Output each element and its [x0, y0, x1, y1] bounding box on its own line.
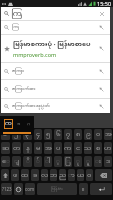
button[interactable]: မ: [34, 142, 42, 154]
button[interactable]: း: [94, 156, 102, 167]
button[interactable]: ဟ: [104, 142, 112, 154]
button[interactable]: Clear query: [95, 7, 108, 20]
staticText: ယ: [77, 171, 84, 180]
button[interactable]: ဆ: [1, 142, 10, 154]
staticText: ာ: [68, 171, 75, 180]
staticText: ၀: [96, 130, 101, 139]
staticText: ၉: [86, 130, 91, 139]
button[interactable]: ည: [59, 169, 66, 181]
button[interactable]: ဝ: [86, 169, 93, 181]
button[interactable]: ါ: [44, 156, 52, 167]
button[interactable]: ဖ: [11, 169, 19, 181]
staticText: က: [5, 120, 12, 128]
staticText: ကြ: [12, 24, 19, 31]
button[interactable]: ဘ: [50, 169, 57, 181]
button[interactable]: ၀: [94, 129, 102, 140]
button[interactable]: ူ: [84, 156, 92, 167]
button[interactable]: ာ: [68, 169, 75, 181]
staticText: ဒ: [106, 157, 111, 166]
button[interactable]: ု: [74, 156, 82, 167]
button[interactable]: ခ: [16, 121, 21, 127]
button[interactable]: လ: [41, 169, 48, 181]
button[interactable]: ယ: [77, 169, 84, 181]
button[interactable]: က: [64, 142, 72, 154]
button[interactable]: ေ: [1, 156, 10, 167]
button[interactable]: အ: [44, 142, 52, 154]
button[interactable]: ၉: [84, 129, 92, 140]
staticText: ၅: [46, 130, 51, 139]
button[interactable]: Space: [37, 183, 77, 195]
staticText: ၂: [14, 130, 19, 139]
staticText: န: [26, 144, 30, 153]
button[interactable]: မြန်မာစကားပုံ · မြန်မာစာပေ: [1, 35, 110, 62]
button[interactable]: ၈: [74, 129, 82, 140]
staticText: အ: [105, 130, 112, 139]
button[interactable]: ။: [79, 183, 88, 195]
button[interactable]: ိ: [23, 156, 32, 167]
button[interactable]: ကြောက်စာ: [1, 80, 110, 98]
button[interactable]: ?123: [1, 183, 12, 195]
button[interactable]: န: [23, 142, 32, 154]
staticText: ကြ: [11, 8, 22, 19]
button[interactable]: ကြောက်စာအုပ္ပတ်: [1, 99, 110, 113]
button[interactable]: ပ: [54, 142, 62, 154]
button[interactable]: ကြ: [1, 21, 110, 34]
button[interactable]: ၆: [54, 129, 62, 140]
button[interactable]: ၁: [1, 129, 10, 140]
button[interactable]: ဒ: [104, 156, 112, 167]
button[interactable]: င: [74, 142, 82, 154]
button[interactable]: com: [25, 183, 35, 195]
staticText: ါ: [45, 157, 51, 166]
button[interactable]: ၅: [44, 129, 52, 140]
staticText: ေ: [2, 157, 10, 166]
button[interactable]: ြ: [64, 156, 72, 167]
button[interactable]: Emoji: [14, 183, 23, 195]
staticText: ၁: [3, 130, 8, 139]
staticText: ျ: [14, 157, 20, 166]
staticText: မြန်မာ: [51, 186, 63, 192]
button[interactable]: Enter: [90, 183, 112, 195]
staticText: ပ: [56, 144, 61, 153]
staticText: ၆: [56, 130, 61, 139]
button[interactable]: Insert suggestion: [95, 100, 108, 113]
button[interactable]: ၂: [12, 129, 21, 140]
button[interactable]: စ: [94, 142, 102, 154]
button[interactable]: ၃: [23, 129, 32, 140]
staticText: ကြောက်စာအုပ္ပတ်: [12, 103, 50, 110]
button[interactable]: Backspace: [95, 169, 112, 181]
button[interactable]: Search: [1, 7, 110, 20]
button[interactable]: Insert suggestion: [95, 21, 108, 34]
button[interactable]: ခ: [31, 169, 39, 181]
staticText: ြ: [65, 157, 71, 166]
button[interactable]: ၇: [64, 129, 72, 140]
staticText: ဘ: [50, 171, 57, 180]
button[interactable]: ကြော: [1, 63, 110, 79]
button[interactable]: ဂ: [26, 121, 31, 127]
staticText: ထ: [21, 171, 29, 180]
staticText: ိ: [26, 157, 30, 166]
staticText: ်: [36, 157, 40, 166]
button[interactable]: ့: [54, 156, 62, 167]
button[interactable]: တ: [12, 142, 21, 154]
button[interactable]: Shift: [1, 169, 9, 181]
staticText: စ: [96, 144, 101, 153]
staticText: ကြော: [12, 68, 25, 75]
staticText: သ: [84, 144, 92, 153]
staticText: အ: [45, 144, 52, 153]
staticText: ၇: [66, 130, 71, 139]
staticText: ဂ: [27, 121, 31, 127]
button[interactable]: သ: [84, 142, 92, 154]
button[interactable]: Insert suggestion: [95, 83, 108, 96]
staticText: ု: [76, 157, 80, 166]
button[interactable]: က: [4, 119, 13, 129]
staticText: လ: [41, 171, 48, 180]
button[interactable]: Insert suggestion: [95, 65, 108, 78]
staticText: 15:50: [97, 0, 112, 7]
button[interactable]: ျ: [12, 156, 21, 167]
staticText: ၃: [25, 130, 30, 139]
button[interactable]: ၄: [34, 129, 42, 140]
button[interactable]: ထ: [21, 169, 29, 181]
button[interactable]: အ: [104, 129, 112, 140]
button[interactable]: Insert suggestion: [95, 42, 108, 55]
button[interactable]: ်: [34, 156, 42, 167]
